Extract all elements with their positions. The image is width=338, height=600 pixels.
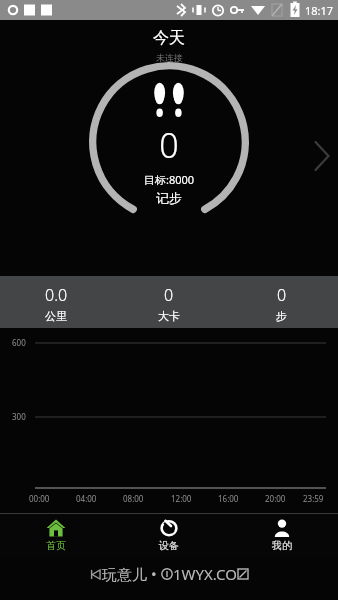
staticText: 步 — [276, 309, 287, 323]
staticText: 0.0 — [45, 284, 68, 306]
staticText: 1WYX.CO — [173, 564, 237, 584]
button[interactable]: 0 — [87, 60, 251, 224]
staticText: 23:59 — [303, 493, 324, 504]
button[interactable]: 我的 — [225, 514, 338, 556]
staticText: 300 — [12, 411, 26, 422]
staticText: 20:00 — [265, 493, 286, 504]
staticText: 设备 — [159, 539, 179, 552]
staticText: 0 — [164, 284, 174, 306]
staticText: 18:17 — [305, 3, 334, 18]
button[interactable]: 今天 — [153, 28, 185, 48]
staticText: 公里 — [45, 309, 67, 323]
staticText: 未连接 — [156, 52, 183, 63]
button[interactable]: 首页 — [0, 514, 112, 556]
staticText: 大卡 — [158, 309, 180, 323]
button[interactable]: Next day — [308, 131, 338, 181]
staticText: 16:00 — [218, 493, 239, 504]
button[interactable]: 0 — [225, 276, 338, 328]
staticText: 首页 — [46, 539, 66, 552]
staticText: 04:00 — [76, 493, 97, 504]
button[interactable]: 0.0 — [0, 276, 112, 328]
staticText: 12:00 — [171, 493, 192, 504]
staticText: 00:00 — [29, 493, 50, 504]
staticText: 目标:8000 — [144, 172, 195, 187]
staticText: 我的 — [272, 539, 292, 552]
staticText: 0 — [159, 122, 179, 168]
button[interactable]: 0 — [112, 276, 225, 328]
staticText: 600 — [12, 337, 26, 348]
staticText: 记步 — [156, 190, 182, 206]
staticText: 08:00 — [123, 493, 144, 504]
button[interactable]: 设备 — [112, 514, 225, 556]
staticText: 0 — [277, 284, 287, 306]
staticText: 玩意儿 • — [102, 564, 161, 584]
